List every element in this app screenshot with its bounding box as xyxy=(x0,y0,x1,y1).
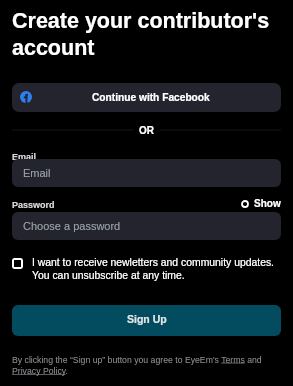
button[interactable]: Show xyxy=(241,198,281,209)
staticText: Continue with Facebook xyxy=(92,92,210,103)
staticText: Email xyxy=(23,167,51,179)
staticText: Sign Up xyxy=(127,313,167,325)
staticText: Choose a password xyxy=(23,220,121,232)
staticText: Email xyxy=(12,152,37,162)
staticText: Show xyxy=(254,198,281,209)
staticText: Create your contributor's account xyxy=(12,9,281,59)
button[interactable]: Choose a password xyxy=(12,212,281,240)
button[interactable]: By clicking the “Sign up” button you agr… xyxy=(12,355,281,376)
button[interactable]: I want to receive newletters and communi… xyxy=(12,257,281,282)
button[interactable]: Sign Up xyxy=(12,305,281,336)
staticText: Password xyxy=(12,200,55,210)
button[interactable]: Continue with Facebook xyxy=(12,83,281,112)
other: Facebook xyxy=(20,91,32,103)
button[interactable]: Email xyxy=(12,159,281,187)
staticText: OR xyxy=(139,125,154,135)
staticText: I want to receive newletters and communi… xyxy=(32,257,281,282)
